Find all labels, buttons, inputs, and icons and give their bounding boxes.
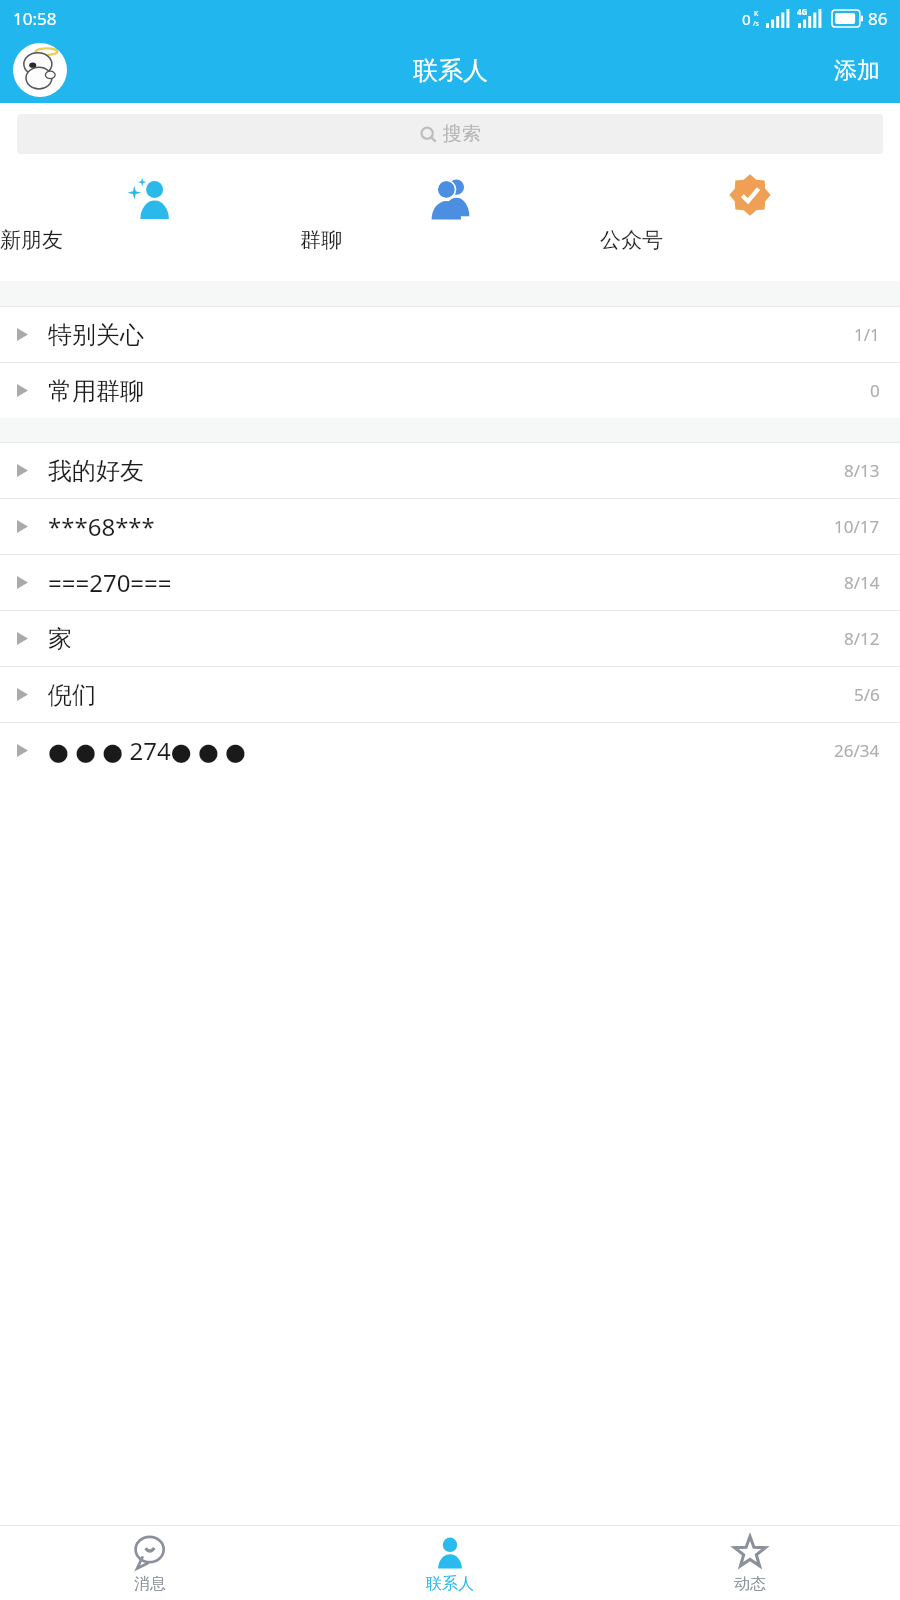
staticText: 家: [48, 624, 72, 654]
staticText: 8/14: [844, 571, 880, 594]
button[interactable]: ===270===: [0, 555, 900, 610]
staticText: 消息: [134, 1574, 166, 1594]
staticText: 10:58: [13, 7, 57, 30]
staticText: 新朋友: [0, 227, 300, 253]
staticText: K: [754, 9, 759, 19]
staticText: 联系人: [426, 1574, 474, 1594]
staticText: 群聊: [300, 227, 600, 253]
staticText: 8/12: [844, 627, 880, 650]
button[interactable]: Profile: [13, 43, 67, 97]
staticText: ===270===: [48, 566, 172, 599]
staticText: 10/17: [834, 515, 880, 538]
staticText: 5/6: [854, 683, 880, 706]
button[interactable]: 公众号: [600, 171, 900, 268]
staticText: 公众号: [600, 227, 900, 253]
button[interactable]: 特别关心: [0, 307, 900, 362]
staticText: 倪们: [48, 680, 96, 710]
button[interactable]: 常用群聊: [0, 363, 900, 418]
staticText: 搜索: [443, 122, 481, 146]
staticText: 联系人: [413, 55, 488, 86]
staticText: /s: [753, 19, 759, 29]
button[interactable]: 联系人: [300, 1526, 600, 1600]
staticText: ● ● ● 274● ● ●: [48, 734, 247, 767]
staticText: 8/13: [844, 459, 880, 482]
staticText: 动态: [734, 1574, 766, 1594]
button[interactable]: 新朋友: [0, 171, 300, 268]
staticText: 我的好友: [48, 456, 144, 486]
button[interactable]: 搜索: [17, 114, 883, 154]
button[interactable]: ● ● ● 274● ● ●: [0, 723, 900, 778]
button[interactable]: 家: [0, 611, 900, 666]
staticText: 1/1: [854, 323, 880, 346]
button[interactable]: 群聊: [300, 171, 600, 268]
staticText: 4G: [797, 6, 808, 17]
staticText: 特别关心: [48, 320, 144, 350]
staticText: 添加: [834, 56, 880, 85]
staticText: 86: [868, 7, 888, 30]
button[interactable]: 添加: [814, 48, 900, 93]
button[interactable]: ***68***: [0, 499, 900, 554]
button[interactable]: 消息: [0, 1526, 300, 1600]
staticText: 0: [742, 9, 751, 29]
button[interactable]: 动态: [600, 1526, 900, 1600]
staticText: 0: [870, 379, 880, 402]
staticText: 26/34: [834, 739, 880, 762]
button[interactable]: 倪们: [0, 667, 900, 722]
staticText: 常用群聊: [48, 376, 144, 406]
staticText: ***68***: [48, 510, 155, 543]
button[interactable]: 我的好友: [0, 443, 900, 498]
